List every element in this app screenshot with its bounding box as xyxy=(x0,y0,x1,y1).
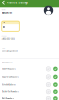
staticText: Swap/Drop Requests xyxy=(2,76,19,78)
staticText: Work Preferences xyxy=(2,62,13,63)
staticText: nancy.allen@acme.com xyxy=(2,50,18,52)
staticText: Email xyxy=(2,48,5,49)
button[interactable]: Clock In/Out Reminders xyxy=(0,88,59,95)
staticText: Schedule Updates xyxy=(2,84,16,86)
staticText: Phone xyxy=(2,36,7,37)
button[interactable]: Schedule Updates xyxy=(0,81,59,88)
staticText: Employee ID xyxy=(3,22,5,23)
staticText: Nancy Allen xyxy=(2,12,12,14)
staticText: Clock In/Out Reminders xyxy=(2,91,19,93)
button[interactable]: Shift Reminders xyxy=(0,95,59,100)
button[interactable]: Time Off Requests xyxy=(0,65,59,73)
staticText: Shift Reminders xyxy=(2,97,14,100)
staticText: Profile & Settings xyxy=(7,1,28,4)
staticText: Name xyxy=(2,9,6,11)
button[interactable]: Swap/Drop Requests xyxy=(0,73,59,81)
staticText: (855) 555-1212 xyxy=(2,38,15,40)
button[interactable]: Back xyxy=(0,0,7,7)
staticText: Time Off Requests xyxy=(2,68,16,70)
